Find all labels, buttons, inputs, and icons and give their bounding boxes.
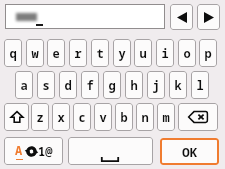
staticText: j [152, 77, 160, 93]
staticText: v [99, 109, 107, 125]
staticText: z [36, 109, 44, 125]
staticText: s [42, 77, 50, 93]
button[interactable]: s [37, 71, 55, 99]
button[interactable]: OK [160, 138, 219, 165]
button[interactable]: Switch input mode [4, 137, 63, 165]
staticText: i [161, 45, 169, 61]
staticText: d [64, 77, 72, 93]
staticText: m [162, 109, 170, 125]
button[interactable]: e [47, 39, 65, 67]
button[interactable]: t [91, 39, 109, 67]
staticText: l [196, 77, 204, 93]
button[interactable]: o [178, 39, 196, 67]
button[interactable]: Move cursor left [170, 4, 193, 30]
staticText: b [120, 109, 128, 125]
staticText: o [183, 45, 191, 61]
button[interactable]: Shift [4, 103, 29, 131]
staticText: OK [182, 143, 198, 161]
staticText: y [118, 45, 126, 61]
button[interactable]: l [191, 71, 209, 99]
staticText: h [130, 77, 138, 93]
button[interactable]: b [115, 103, 133, 131]
staticText: q [9, 45, 17, 61]
staticText: p [204, 45, 212, 61]
button[interactable]: v [94, 103, 112, 131]
button[interactable]: u [134, 39, 152, 67]
button[interactable]: Backspace [178, 103, 218, 131]
button[interactable]: k [169, 71, 187, 99]
staticText: f [86, 77, 94, 93]
button[interactable]: i [156, 39, 174, 67]
button[interactable]: g [103, 71, 121, 99]
staticText: A [15, 142, 23, 158]
button[interactable]: Move cursor right [197, 4, 220, 30]
staticText: x [57, 109, 65, 125]
button[interactable]: x [52, 103, 70, 131]
staticText: a [20, 77, 28, 93]
button[interactable]: r [69, 39, 87, 67]
button[interactable]: q [4, 39, 22, 67]
staticText: g [108, 77, 116, 93]
button[interactable]: w [26, 39, 44, 67]
button[interactable]: a [15, 71, 33, 99]
button[interactable]: n [136, 103, 154, 131]
staticText: r [74, 45, 82, 61]
button[interactable]: d [59, 71, 77, 99]
staticText: t [96, 45, 104, 61]
staticText: e [52, 45, 60, 61]
staticText: 1@ [38, 143, 53, 159]
button[interactable]: m [157, 103, 175, 131]
staticText: n [141, 109, 149, 125]
button[interactable]: z [31, 103, 49, 131]
staticText: k [174, 77, 182, 93]
staticText: u [139, 45, 147, 61]
button[interactable]: y [113, 39, 131, 67]
button[interactable]: p [199, 39, 217, 67]
button[interactable]: j [147, 71, 165, 99]
button[interactable]: c [73, 103, 91, 131]
staticText: w [31, 45, 39, 61]
button[interactable] [5, 4, 165, 29]
button[interactable]: h [125, 71, 143, 99]
staticText: c [78, 109, 86, 125]
button[interactable]: f [81, 71, 99, 99]
button[interactable]: Space [68, 137, 153, 165]
